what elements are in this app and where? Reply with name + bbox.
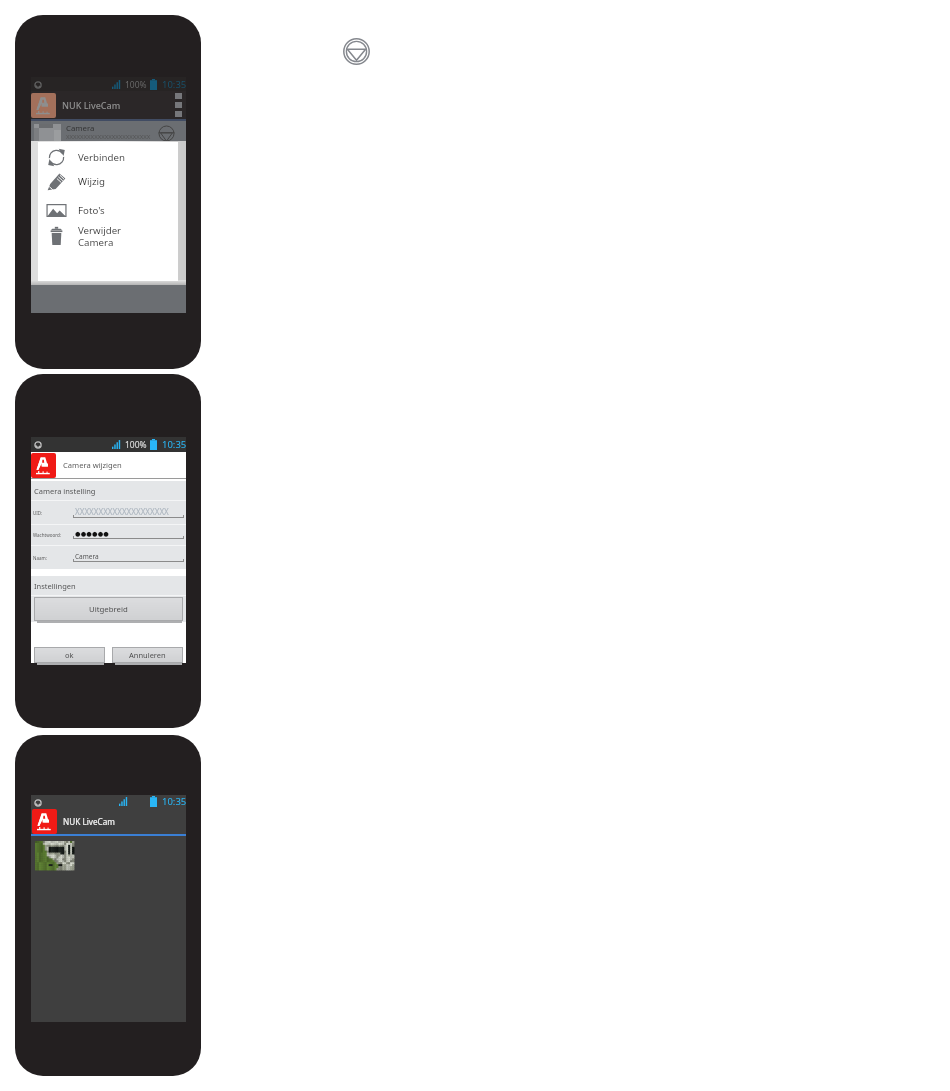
staticText: NUK LiveCam bbox=[63, 816, 116, 827]
staticText: Camera bbox=[66, 123, 95, 134]
staticText: Foto's bbox=[78, 204, 105, 217]
staticText: NUK LiveCam bbox=[62, 99, 121, 111]
button[interactable]: Verbinden bbox=[38, 146, 178, 168]
staticText: Instellingen bbox=[34, 581, 76, 591]
button[interactable]: Verwijder Camera bbox=[38, 222, 178, 250]
staticText: 10:35 bbox=[162, 795, 187, 808]
button[interactable]: Uitgebreid bbox=[34, 597, 183, 621]
button[interactable]: Foto's bbox=[38, 199, 178, 221]
button[interactable]: ok bbox=[34, 647, 105, 663]
staticText: ●●●●●● bbox=[75, 530, 110, 538]
staticText: Camera bbox=[75, 552, 99, 561]
button[interactable]: Wijzig bbox=[38, 170, 178, 192]
staticText: UID: bbox=[33, 510, 43, 516]
staticText: Camera wijzigen bbox=[63, 460, 122, 470]
staticText: Naam: bbox=[33, 555, 47, 561]
staticText: 100% bbox=[125, 439, 147, 451]
staticText: Wijzig bbox=[78, 175, 106, 188]
staticText: 10:35 bbox=[162, 78, 187, 91]
button[interactable]: Annuleren bbox=[112, 647, 183, 663]
button[interactable] bbox=[35, 841, 74, 870]
staticText: Uitgebreid bbox=[89, 604, 128, 615]
staticText: Camera instelling bbox=[34, 486, 96, 496]
staticText: XXXXXXXXXXXXXXXXXXXX bbox=[75, 506, 169, 517]
staticText: Verwijder Camera bbox=[78, 224, 122, 249]
staticText: 10:35 bbox=[162, 438, 187, 451]
button[interactable]: Down bbox=[343, 38, 370, 65]
staticText: Annuleren bbox=[129, 650, 166, 660]
staticText: Verbinden bbox=[78, 151, 125, 164]
staticText: ok bbox=[65, 650, 74, 660]
staticText: 100% bbox=[125, 79, 147, 91]
staticText: Wachtwoord: bbox=[33, 532, 61, 538]
button[interactable]: Camera bbox=[31, 121, 186, 143]
staticText: XXXXXXXXXXXXXXXXXXXXXXXX bbox=[66, 133, 151, 141]
